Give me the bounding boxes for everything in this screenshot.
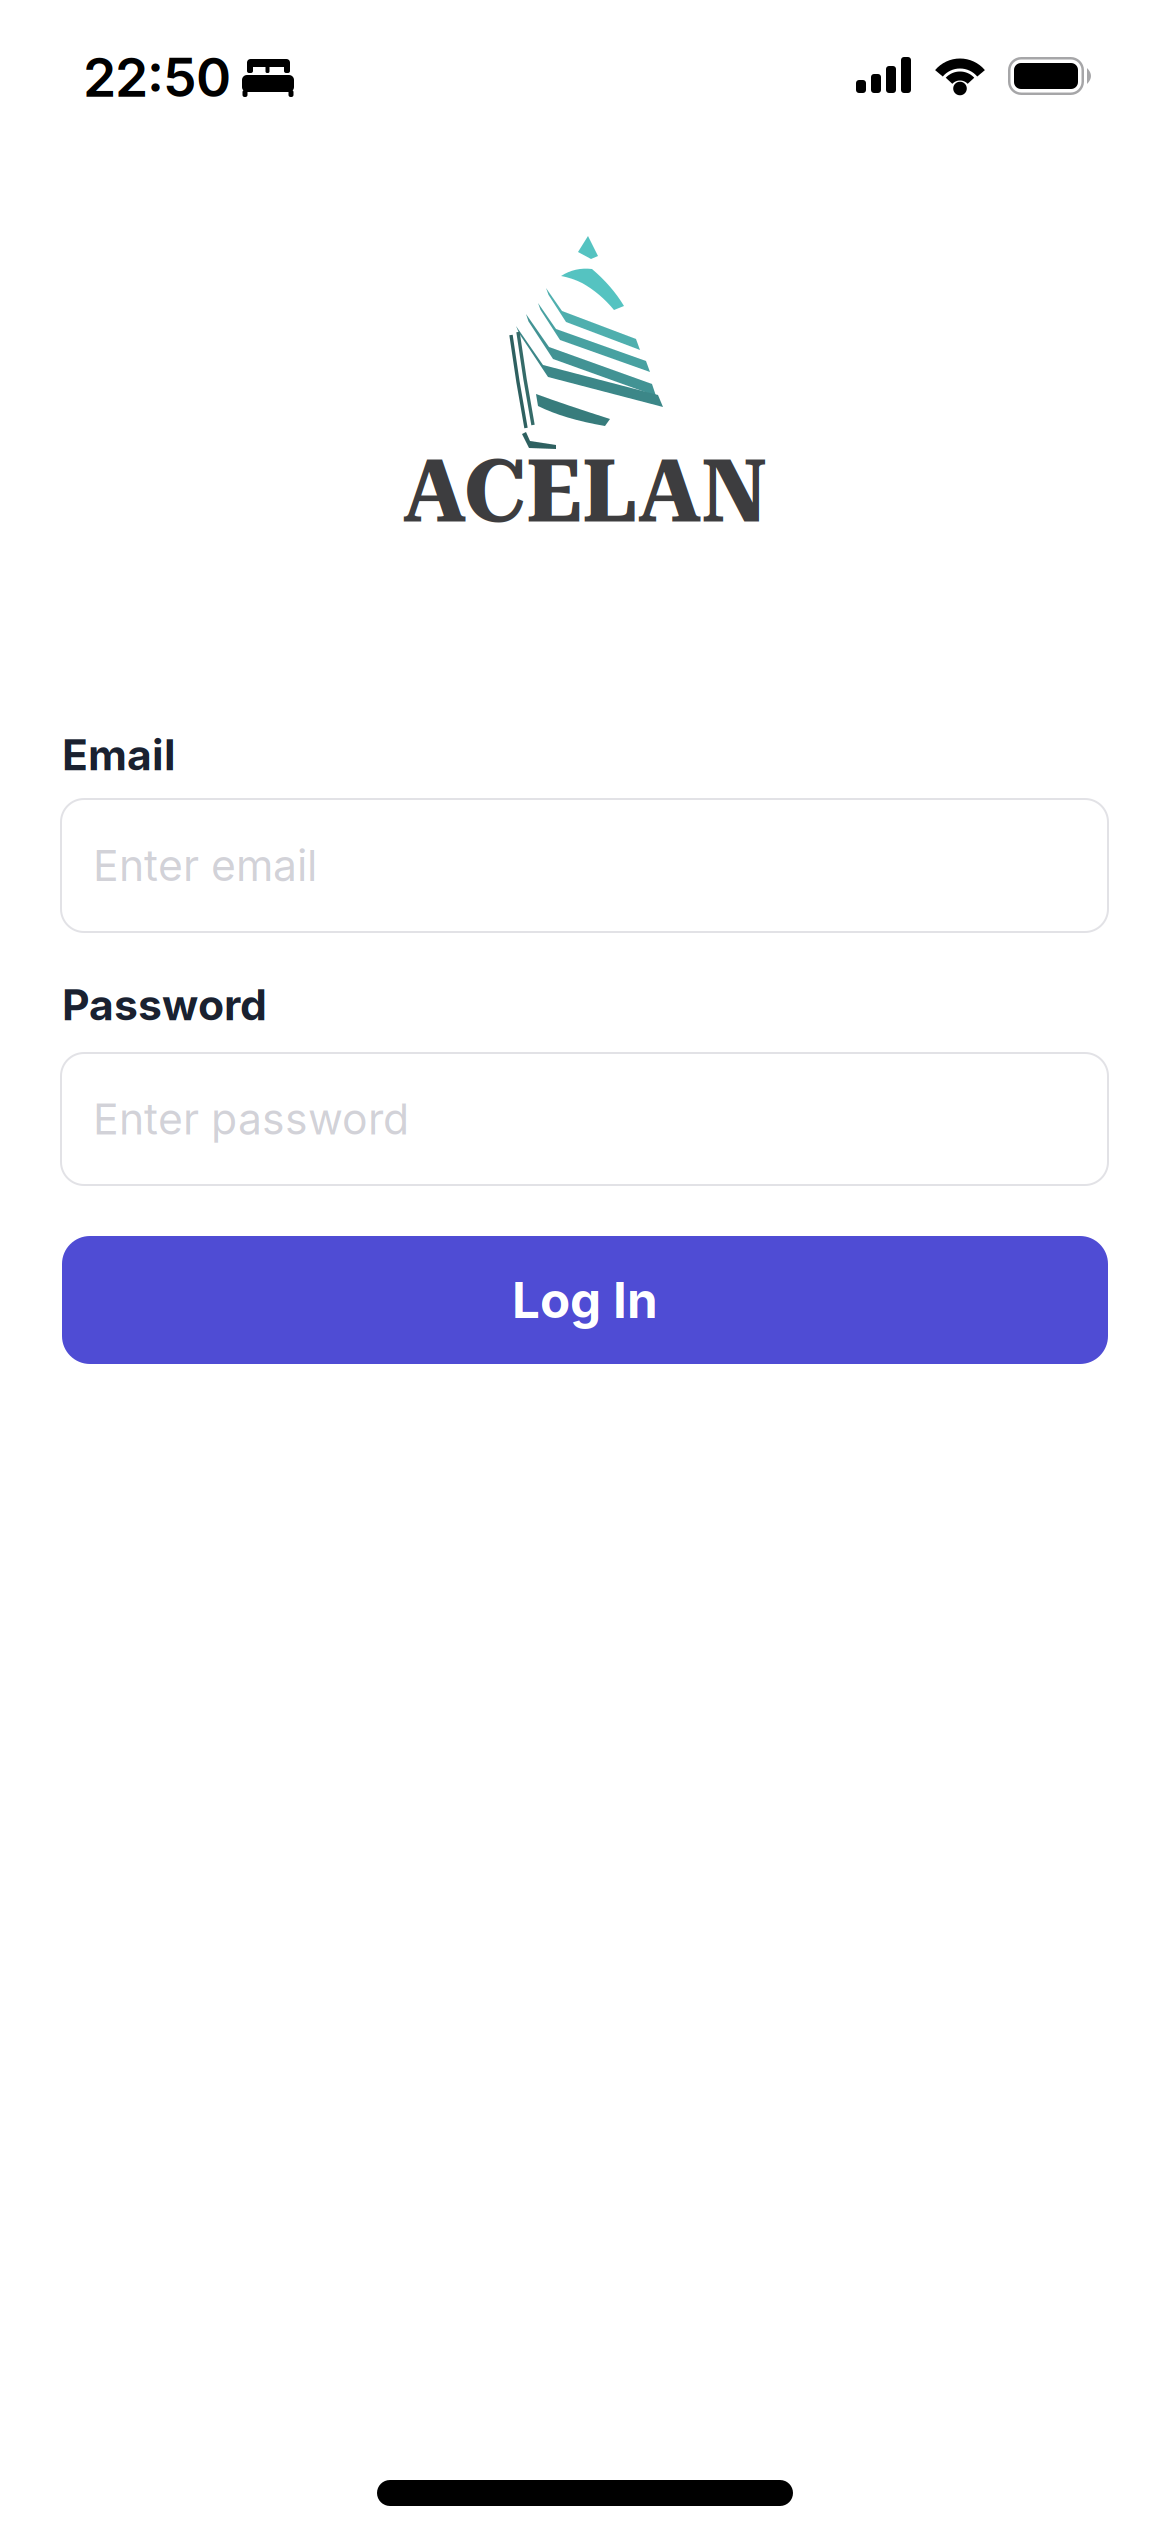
button[interactable]: Log In bbox=[62, 1236, 1108, 1364]
staticText: ACELAN bbox=[403, 440, 767, 543]
staticText: Password bbox=[62, 979, 267, 1031]
button[interactable]: Enter password bbox=[60, 1052, 1109, 1186]
button[interactable]: Enter email bbox=[60, 798, 1109, 933]
staticText: 22:50 bbox=[83, 45, 231, 109]
staticText: Enter email bbox=[93, 840, 317, 891]
staticText: Log In bbox=[512, 1270, 658, 1330]
staticText: Enter password bbox=[93, 1093, 409, 1145]
staticText: Email bbox=[62, 729, 176, 781]
